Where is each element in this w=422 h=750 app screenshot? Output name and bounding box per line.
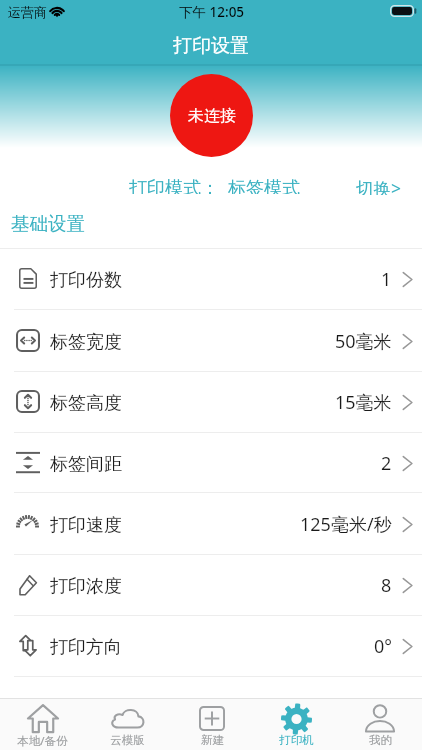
staticText: 未连接	[188, 106, 236, 126]
staticText: 2	[381, 451, 392, 476]
staticText: 标签宽度	[50, 331, 122, 354]
staticText: 打印方向	[50, 636, 122, 659]
staticText: 打印份数	[50, 269, 122, 292]
staticText: 1	[381, 267, 392, 292]
staticText: 标签间距	[50, 453, 122, 476]
staticText: 打印设置	[173, 34, 249, 58]
button[interactable]: 打印机	[254, 699, 338, 750]
staticText: 打印机	[279, 733, 314, 747]
staticText: 打印模式： 标签模式	[129, 175, 300, 194]
button[interactable]: 打印份数	[0, 248, 422, 309]
button[interactable]: 未连接	[170, 74, 253, 157]
button[interactable]: 我的	[338, 699, 422, 750]
button[interactable]: 新建	[170, 699, 254, 750]
button[interactable]: 打印浓度	[0, 554, 422, 615]
staticText: 打印浓度	[50, 575, 122, 598]
button[interactable]: 打印方向	[0, 615, 422, 676]
button[interactable]: 切换>	[346, 172, 422, 199]
button[interactable]: 标签间距	[0, 432, 422, 492]
staticText: 打印速度	[50, 514, 122, 537]
staticText: 基础设置	[11, 212, 85, 235]
button[interactable]: 打印模式： 标签模式	[120, 171, 309, 198]
staticText: 标签高度	[50, 392, 122, 415]
staticText: 我的	[369, 733, 392, 747]
button[interactable]: 标签宽度	[0, 309, 422, 371]
staticText: 8	[381, 573, 392, 598]
staticText: 0°	[374, 634, 392, 659]
staticText: 运营商	[8, 4, 47, 20]
button[interactable]: 打印速度	[0, 492, 422, 554]
button[interactable]: 本地/备份	[0, 699, 85, 750]
staticText: 云模版	[110, 733, 145, 747]
button[interactable]: 标签高度	[0, 371, 422, 432]
staticText: 125毫米/秒	[300, 512, 392, 537]
staticText: 本地/备份	[17, 733, 68, 749]
staticText: 新建	[201, 733, 224, 747]
staticText: 下午 12:05	[179, 3, 245, 21]
staticText: 切换>	[356, 176, 402, 195]
button[interactable]: 云模版	[85, 699, 170, 750]
staticText: 50毫米	[335, 329, 392, 354]
staticText: 15毫米	[335, 390, 392, 415]
